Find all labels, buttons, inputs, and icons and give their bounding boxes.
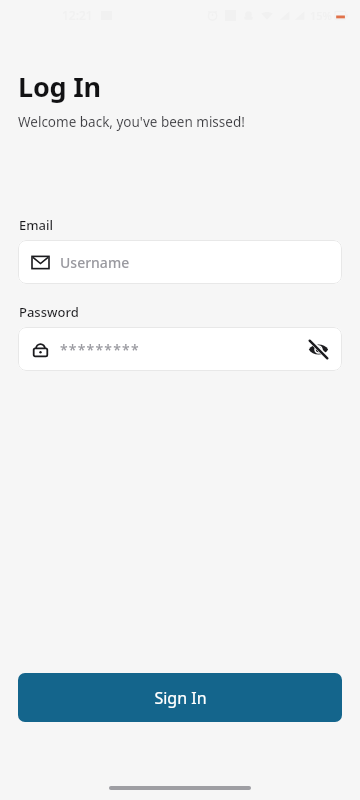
staticText: Sign In (154, 687, 207, 709)
staticText: Log In (18, 68, 101, 105)
staticText: Email (19, 216, 54, 234)
staticText: Username (60, 253, 130, 272)
staticText: ********* (60, 340, 140, 359)
button[interactable]: ********* (18, 327, 342, 371)
staticText: Welcome back, you've been missed! (18, 113, 245, 131)
button[interactable]: Show password (298, 329, 338, 369)
button[interactable]: Sign In (18, 673, 342, 722)
button[interactable]: Username (18, 240, 342, 284)
staticText: Password (19, 303, 79, 321)
